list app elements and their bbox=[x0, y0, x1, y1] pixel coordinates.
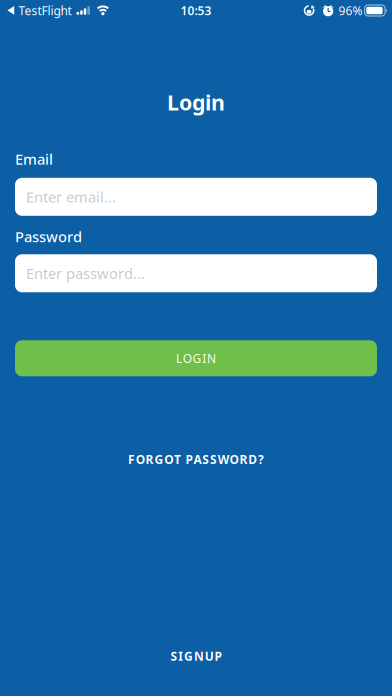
staticText: Login bbox=[167, 88, 225, 116]
staticText: Enter password... bbox=[26, 263, 145, 283]
staticText: FORGOT PASSWORD? bbox=[128, 451, 264, 467]
staticText: Enter email... bbox=[26, 187, 116, 207]
staticText: Email bbox=[15, 149, 53, 169]
staticText: 10:53 bbox=[180, 2, 211, 18]
staticText: 96% bbox=[339, 2, 363, 18]
button[interactable]: SIGNUP bbox=[136, 648, 256, 664]
staticText: LOGIN bbox=[176, 350, 216, 366]
staticText: Password bbox=[15, 227, 82, 246]
button[interactable]: FORGOT PASSWORD? bbox=[76, 451, 316, 467]
staticText: SIGNUP bbox=[170, 648, 221, 664]
button[interactable]: LOGIN bbox=[0, 340, 392, 376]
staticText: TestFlight bbox=[19, 2, 72, 18]
